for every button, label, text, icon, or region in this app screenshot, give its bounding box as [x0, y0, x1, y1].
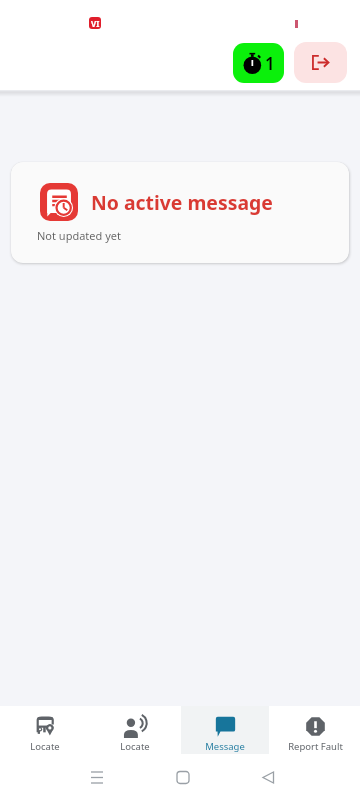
staticText: Locate	[120, 740, 150, 753]
button[interactable]: Message	[181, 706, 269, 754]
staticText: Locate	[30, 740, 60, 753]
staticText: VI	[91, 18, 100, 29]
button[interactable]: Logout	[294, 42, 347, 83]
button[interactable]: Report Fault	[271, 706, 359, 754]
staticText: Report Fault	[288, 740, 343, 753]
button[interactable]: Timer 1	[233, 43, 284, 83]
staticText: 1	[265, 52, 275, 75]
staticText: Not updated yet	[37, 228, 121, 243]
staticText: Message	[205, 740, 245, 753]
button[interactable]: Locate	[91, 706, 179, 754]
staticText: No active message	[91, 189, 273, 215]
button[interactable]: No active message	[11, 162, 349, 263]
button[interactable]: Locate	[1, 706, 89, 754]
